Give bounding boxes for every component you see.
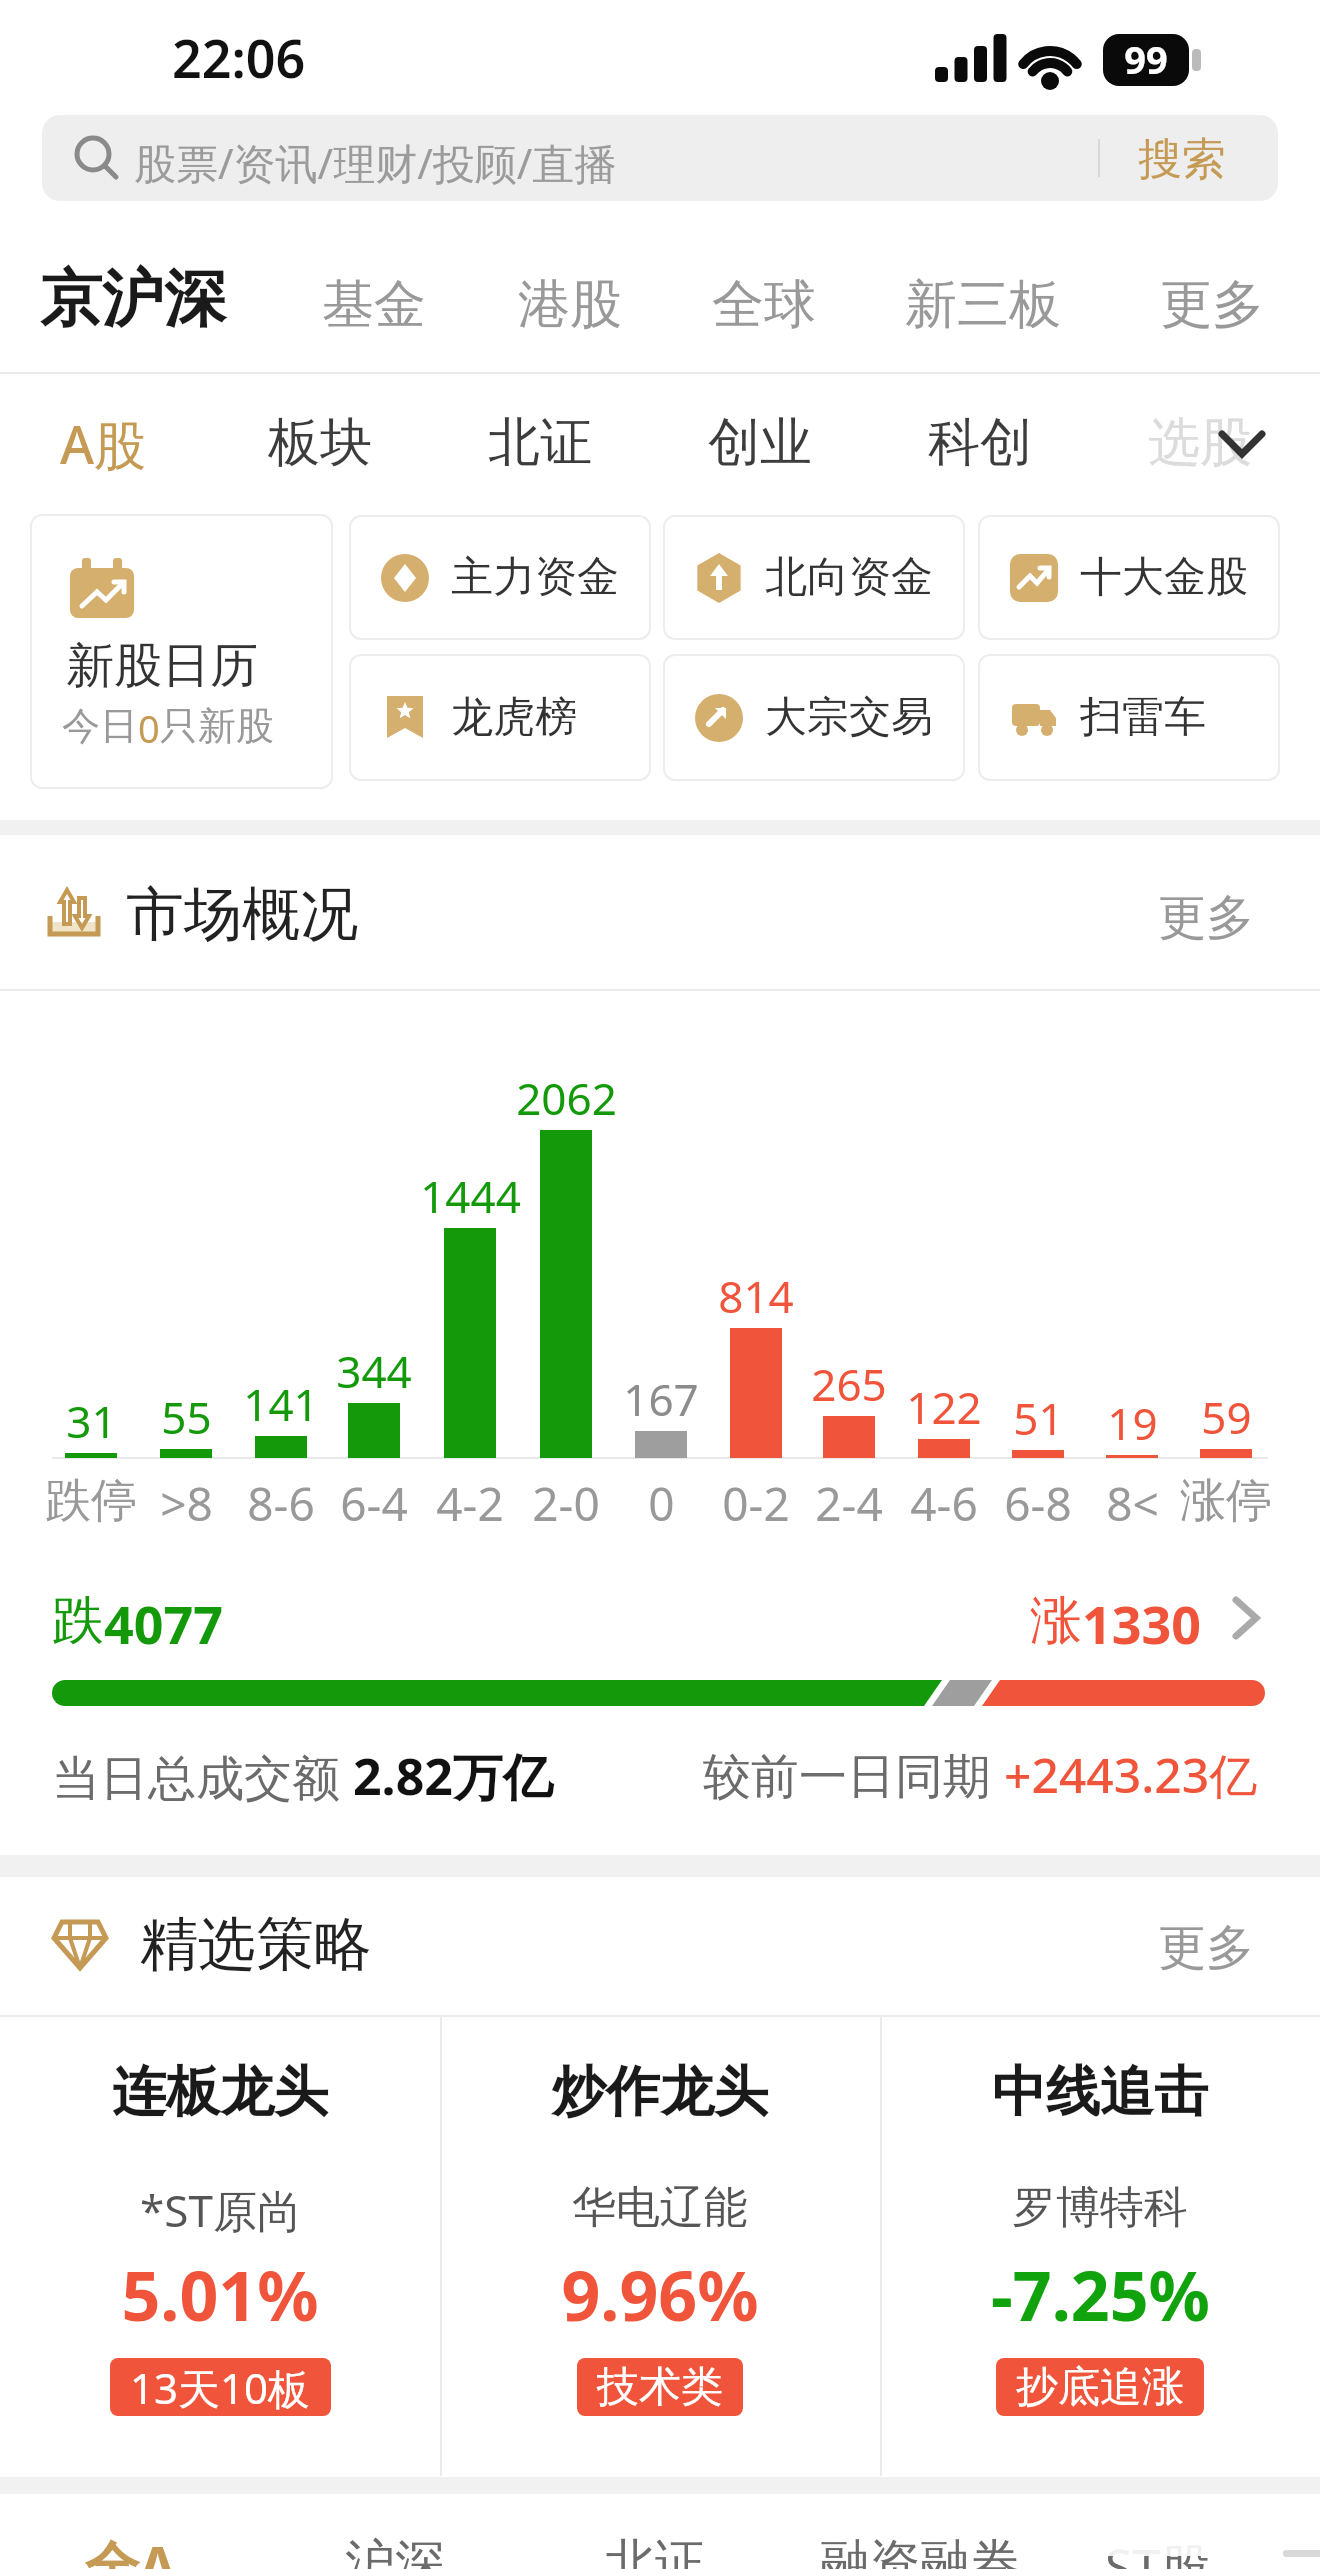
staticText: 京沪深 xyxy=(40,260,226,338)
button[interactable]: ST股 xyxy=(1105,2532,1211,2569)
button[interactable]: 全球 xyxy=(712,272,816,338)
staticText: 罗博特科 xyxy=(1012,2180,1188,2235)
staticText: 31 xyxy=(66,1391,117,1451)
staticText: 涨停 xyxy=(1180,1472,1272,1530)
staticText: 141 xyxy=(243,1374,319,1434)
button[interactable]: 龙虎榜 xyxy=(349,654,651,781)
button[interactable]: 板块 xyxy=(268,410,372,476)
staticText: 22:06 xyxy=(172,22,306,93)
button[interactable]: 更多 xyxy=(1160,272,1264,338)
button[interactable]: 扫雷车 xyxy=(978,654,1280,781)
staticText: A股 xyxy=(60,408,147,479)
staticText: 主力资金 xyxy=(451,551,619,604)
staticText: 9.96% xyxy=(561,2248,759,2341)
staticText: 2.82万亿 xyxy=(353,1742,553,1810)
button[interactable]: 选股 xyxy=(1148,410,1252,476)
button[interactable]: 沪深 xyxy=(345,2532,445,2569)
button[interactable]: 十大金股 xyxy=(978,515,1280,640)
staticText: 99 xyxy=(1124,33,1168,85)
button[interactable]: 涨 xyxy=(1030,1588,1201,1659)
staticText: 更多 xyxy=(1160,272,1264,338)
staticText: 北证 xyxy=(488,410,592,476)
staticText: 8-6 xyxy=(247,1472,315,1535)
staticText: 167 xyxy=(623,1369,699,1429)
staticText: 只新股 xyxy=(160,702,274,750)
staticText: 更多 xyxy=(1158,1918,1254,1978)
staticText: 51 xyxy=(1013,1388,1064,1448)
staticText: 0 xyxy=(648,1472,675,1535)
staticText: 6-8 xyxy=(1004,1472,1072,1535)
staticText: 涨 xyxy=(1030,1588,1082,1654)
button[interactable]: A股 xyxy=(60,408,147,479)
button[interactable]: 新三板 xyxy=(905,272,1061,338)
staticText: 0-2 xyxy=(722,1472,790,1535)
button[interactable]: 股票/资讯/理财/投顾/直播 xyxy=(42,115,1278,201)
staticText: 4077 xyxy=(104,1588,223,1659)
staticText: 抄底追涨 xyxy=(1016,2361,1184,2414)
staticText: 1444 xyxy=(420,1166,521,1226)
staticText: 全球 xyxy=(712,272,816,338)
button[interactable]: 主力资金 xyxy=(349,515,651,640)
button[interactable]: 北证 xyxy=(605,2532,705,2569)
staticText: 大宗交易 xyxy=(765,691,933,744)
staticText: 基金 xyxy=(322,272,426,338)
staticText: 龙虎榜 xyxy=(451,691,577,744)
button[interactable]: 港股 xyxy=(518,272,622,338)
staticText: 技术类 xyxy=(597,2361,723,2414)
staticText: 跌 xyxy=(52,1588,104,1654)
staticText: 1330 xyxy=(1082,1588,1201,1659)
button[interactable]: 更多 xyxy=(1158,1918,1254,1978)
staticText: 新股日历 xyxy=(66,636,258,696)
staticText: *ST原尚 xyxy=(140,2180,301,2240)
button[interactable]: 基金 xyxy=(322,272,426,338)
staticText: >8 xyxy=(160,1472,213,1535)
staticText: 连板龙头 xyxy=(112,2058,328,2126)
staticText: 6-4 xyxy=(340,1472,408,1535)
staticText: 122 xyxy=(906,1377,982,1437)
button[interactable]: 融资融券 xyxy=(820,2532,1020,2569)
staticText: 当日总成交额 xyxy=(52,1744,353,1810)
staticText: 融资融券 xyxy=(820,2532,1020,2569)
staticText: 5.01% xyxy=(121,2248,319,2341)
staticText: 板块 xyxy=(268,410,372,476)
staticText: 市场概况 xyxy=(126,878,358,951)
staticText: 炒作龙头 xyxy=(552,2058,768,2126)
button[interactable]: 新股日历 xyxy=(30,514,333,789)
button[interactable] xyxy=(0,2016,440,2476)
staticText: 4-6 xyxy=(910,1472,978,1535)
staticText: 今日 xyxy=(62,702,138,750)
button[interactable]: 更多 xyxy=(1158,888,1254,948)
button[interactable]: 北证 xyxy=(488,410,592,476)
button[interactable]: 创业 xyxy=(708,410,812,476)
staticText: 更多 xyxy=(1158,888,1254,948)
button[interactable]: 科创 xyxy=(928,410,1032,476)
staticText: 全A xyxy=(85,2528,177,2569)
staticText: 344 xyxy=(336,1341,412,1401)
staticText: 创业 xyxy=(708,410,812,476)
staticText: 较前一日同期 xyxy=(703,1742,1004,1808)
button[interactable] xyxy=(440,2016,880,2476)
button[interactable]: 大宗交易 xyxy=(663,654,965,781)
staticText: 814 xyxy=(718,1266,794,1326)
staticText: 2062 xyxy=(516,1068,617,1128)
button[interactable]: 北向资金 xyxy=(663,515,965,640)
staticText: 2-4 xyxy=(815,1472,883,1535)
staticText: 4-2 xyxy=(436,1472,504,1535)
staticText: 55 xyxy=(161,1387,212,1447)
staticText: 19 xyxy=(1107,1393,1158,1453)
button[interactable]: 全A xyxy=(85,2528,177,2569)
staticText: 扫雷车 xyxy=(1080,691,1206,744)
staticText: 新三板 xyxy=(905,272,1061,338)
staticText: 0 xyxy=(138,702,160,754)
staticText: 科创 xyxy=(928,410,1032,476)
staticText: 59 xyxy=(1201,1387,1252,1447)
button[interactable] xyxy=(880,2016,1320,2476)
staticText: 十大金股 xyxy=(1080,551,1248,604)
button[interactable]: 京沪深 xyxy=(40,260,226,338)
staticText: 沪深 xyxy=(345,2532,445,2569)
staticText: 搜索 xyxy=(1138,132,1226,187)
staticText: 北证 xyxy=(605,2532,705,2569)
staticText: 选股 xyxy=(1148,410,1252,476)
staticText: 股票/资讯/理财/投顾/直播 xyxy=(134,134,617,191)
staticText: 港股 xyxy=(518,272,622,338)
